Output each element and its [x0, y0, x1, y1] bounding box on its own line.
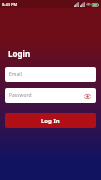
staticText: Password: [9, 92, 32, 99]
staticText: 8:43 PM: [2, 2, 18, 7]
staticText: Email: [9, 71, 22, 78]
staticText: Login: [8, 48, 31, 59]
button[interactable]: Password: [5, 88, 96, 103]
button[interactable]: Show password: [82, 91, 92, 101]
staticText: Log In: [41, 117, 60, 125]
button[interactable]: Email: [5, 67, 96, 82]
button[interactable]: Log In: [5, 113, 96, 128]
